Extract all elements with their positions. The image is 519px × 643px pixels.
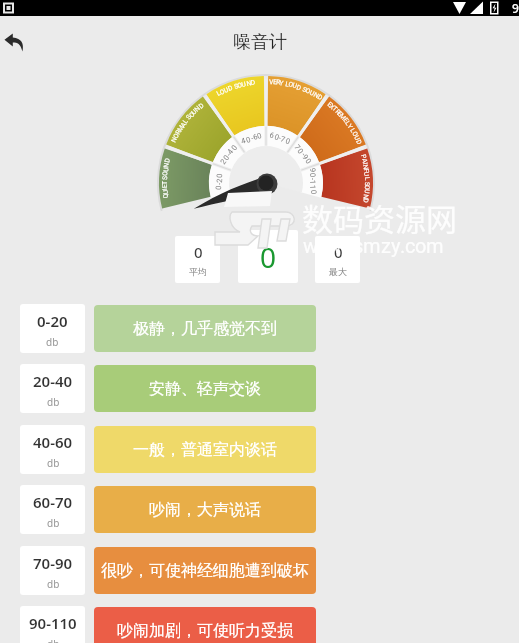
staticText: 极静，几乎感觉不到 xyxy=(133,319,277,339)
staticText: 0-20 xyxy=(37,311,68,331)
staticText: 40-60 xyxy=(33,432,73,452)
button[interactable]: 40-60 xyxy=(0,425,519,474)
staticText: db xyxy=(47,577,60,591)
staticText: 很吵，可使神经细胞遭到破坏 xyxy=(101,561,309,581)
button[interactable]: Back xyxy=(0,22,35,62)
staticText: 0 xyxy=(260,238,277,276)
staticText: 0 xyxy=(194,242,203,262)
button[interactable]: 20-40 xyxy=(0,364,519,413)
staticText: 一般，普通室内谈话 xyxy=(133,440,277,460)
staticText: db xyxy=(47,516,60,530)
staticText: 安静、轻声交谈 xyxy=(149,379,261,399)
button[interactable]: 0-20 xyxy=(0,304,519,353)
staticText: db xyxy=(47,456,60,470)
button[interactable]: 90-110 xyxy=(0,606,519,643)
staticText: 60-70 xyxy=(33,492,73,512)
button[interactable]: 0 xyxy=(315,236,360,283)
staticText: 吵闹加剧，可使听力受损 xyxy=(117,621,293,641)
staticText: 最大 xyxy=(329,266,347,277)
button[interactable]: 0 xyxy=(238,230,298,283)
button[interactable]: 60-70 xyxy=(0,485,519,534)
staticText: db xyxy=(46,335,59,349)
staticText: 70-90 xyxy=(33,553,73,573)
staticText: 平均 xyxy=(189,266,207,277)
staticText: 20-40 xyxy=(33,371,73,391)
staticText: db xyxy=(47,395,60,409)
button[interactable]: 0 xyxy=(175,236,220,283)
staticText: 0 xyxy=(334,242,343,262)
staticText: db xyxy=(47,637,60,643)
staticText: 90-110 xyxy=(29,613,77,633)
staticText: 9: xyxy=(512,0,519,16)
button[interactable]: 70-90 xyxy=(0,546,519,595)
staticText: 噪音计 xyxy=(233,31,287,54)
staticText: 吵闹，大声说话 xyxy=(149,500,261,520)
